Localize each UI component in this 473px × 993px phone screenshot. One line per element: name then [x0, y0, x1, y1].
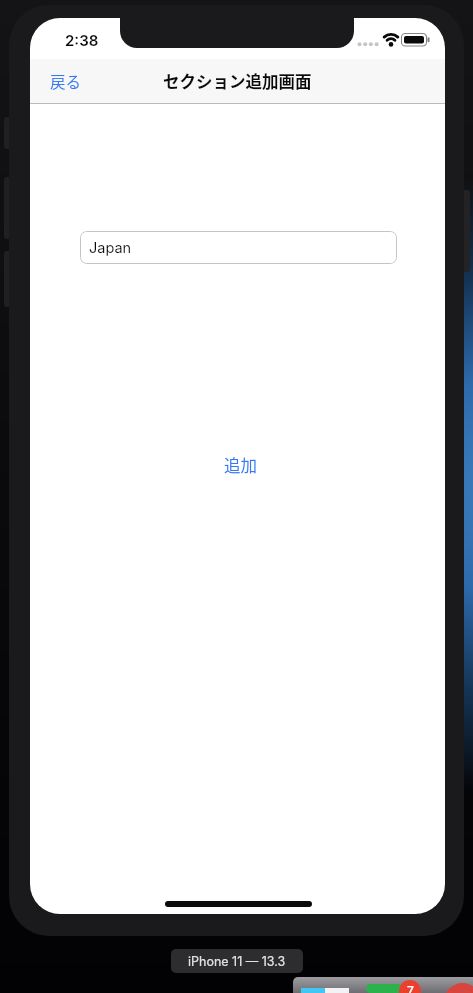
staticText: 戻る [50, 70, 82, 92]
button[interactable]: Japan [80, 231, 397, 264]
staticText: 2:38 [65, 31, 99, 49]
staticText: Japan [89, 239, 132, 257]
staticText: 7 [407, 983, 414, 993]
button[interactable]: 追加 [205, 448, 275, 482]
staticText: 追加 [224, 453, 257, 477]
staticText: セクション追加画面 [163, 69, 312, 93]
staticText: iPhone 11 — 13.3 [188, 954, 286, 969]
button[interactable]: 戻る [36, 63, 96, 99]
